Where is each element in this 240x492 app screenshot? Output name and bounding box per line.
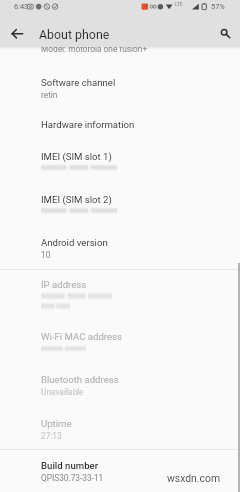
staticText: QPIS30.73-33-11 bbox=[41, 473, 104, 483]
button[interactable]: IP address bbox=[0, 272, 240, 328]
button[interactable]: Uptime bbox=[0, 415, 240, 449]
staticText: 57% bbox=[211, 2, 225, 11]
staticText: About phone bbox=[39, 27, 110, 42]
button[interactable]: Android version bbox=[0, 232, 240, 269]
staticText: LTE bbox=[175, 2, 183, 8]
staticText: Build number bbox=[41, 460, 99, 471]
staticText: Unavailable bbox=[41, 387, 84, 397]
button[interactable]: Software channel bbox=[0, 72, 240, 115]
staticText: IP address bbox=[41, 279, 87, 290]
staticText: 10 bbox=[41, 250, 51, 260]
staticText: 27:13 bbox=[41, 431, 62, 441]
button[interactable]: IMEI (SIM slot 2) bbox=[0, 189, 240, 232]
button[interactable]: Hardware information bbox=[0, 115, 240, 146]
staticText: IMEI (SIM slot 2) bbox=[41, 194, 112, 205]
staticText: wsxdn.com bbox=[167, 472, 221, 484]
staticText: retin bbox=[41, 90, 58, 100]
staticText: 6:43 bbox=[14, 2, 29, 11]
staticText: Uptime bbox=[41, 418, 72, 429]
button[interactable]: IMEI (SIM slot 1) bbox=[0, 146, 240, 189]
button[interactable]: Model: motorola one fusion+ bbox=[0, 42, 240, 54]
staticText: Bluetooth address bbox=[41, 374, 119, 385]
staticText: IMEI (SIM slot 1) bbox=[41, 151, 112, 162]
button[interactable]: Wi-Fi MAC address bbox=[0, 329, 240, 372]
staticText: Hardware information bbox=[41, 119, 135, 130]
button[interactable]: Bluetooth address bbox=[0, 372, 240, 415]
button[interactable]: Back bbox=[5, 21, 29, 45]
button[interactable]: Build number bbox=[0, 452, 240, 492]
staticText: Android version bbox=[41, 237, 108, 248]
staticText: Software channel bbox=[41, 77, 116, 88]
button[interactable]: Search bbox=[213, 21, 237, 45]
staticText: Model: motorola one fusion+ bbox=[41, 44, 148, 54]
staticText: Wi-Fi MAC address bbox=[41, 331, 122, 342]
